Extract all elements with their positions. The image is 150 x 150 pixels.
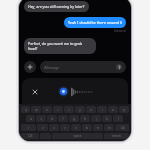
staticText: f: [62, 117, 64, 121]
button[interactable]: j: [91, 115, 101, 122]
button[interactable]: 123: [21, 133, 39, 139]
button[interactable]: space: [52, 133, 103, 139]
button[interactable]: a: [26, 115, 35, 122]
button[interactable]: u: [86, 106, 96, 113]
button[interactable]: h: [80, 115, 90, 122]
button[interactable]: ⌫: [115, 124, 129, 131]
button[interactable]: Hey, are you still coming by later?: [24, 1, 89, 12]
button[interactable]: Record voice message: [58, 86, 69, 97]
staticText: j: [96, 117, 97, 121]
button[interactable]: z: [37, 124, 48, 131]
staticText: l: [118, 117, 119, 121]
button[interactable]: Send: [116, 64, 122, 70]
button[interactable]: m: [104, 124, 114, 131]
staticText: z: [42, 126, 44, 130]
button[interactable]: i: [97, 106, 107, 113]
staticText: m: [108, 126, 111, 130]
staticText: return: [112, 134, 121, 138]
button[interactable]: e: [42, 106, 52, 113]
staticText: Yeah I should be there around 6: [68, 20, 122, 25]
staticText: b: [86, 126, 88, 130]
button[interactable]: Add attachment: [24, 61, 36, 73]
staticText: w: [35, 108, 38, 112]
button[interactable]: s: [36, 115, 46, 122]
staticText: t: [68, 108, 70, 112]
button[interactable]: x: [49, 124, 59, 131]
staticText: k: [106, 117, 108, 121]
button[interactable]: k: [102, 115, 112, 122]
button[interactable]: d: [47, 115, 57, 122]
staticText: q: [25, 108, 27, 112]
staticText: Perfect, do you want me to grab food?: [28, 41, 92, 51]
button[interactable]: return: [104, 133, 129, 139]
button[interactable]: f: [58, 115, 68, 122]
staticText: x: [53, 126, 55, 130]
button[interactable]: c: [60, 124, 70, 131]
staticText: ⌫: [120, 126, 125, 129]
staticText: s: [40, 117, 42, 121]
staticText: u: [90, 108, 92, 112]
button[interactable]: n: [93, 124, 103, 131]
staticText: p: [123, 108, 125, 112]
staticText: d: [51, 117, 53, 121]
button[interactable]: iMessage: [40, 61, 126, 73]
button[interactable]: v: [71, 124, 81, 131]
button[interactable]: Perfect, do you want me to grab food?: [24, 38, 96, 54]
staticText: Hey, are you still coming by later?: [28, 4, 85, 9]
staticText: h: [84, 117, 86, 121]
staticText: 123: [27, 134, 33, 138]
button[interactable]: ⇧: [21, 124, 36, 131]
button[interactable]: t: [64, 106, 74, 113]
staticText: r: [57, 108, 59, 112]
button[interactable]: q: [21, 106, 30, 113]
staticText: c: [64, 126, 66, 130]
staticText: a: [30, 117, 32, 121]
staticText: n: [97, 126, 99, 130]
button[interactable]: Yeah I should be there around 6: [64, 17, 126, 28]
button[interactable]: r: [53, 106, 63, 113]
staticText: ⇧: [27, 126, 30, 129]
button[interactable]: o: [108, 106, 118, 113]
staticText: g: [73, 117, 75, 121]
staticText: o: [112, 108, 114, 112]
button[interactable]: l: [113, 115, 123, 122]
button[interactable]: y: [75, 106, 85, 113]
button[interactable]: g: [69, 115, 79, 122]
staticText: e: [46, 108, 48, 112]
button[interactable]: Close voice message: [30, 87, 39, 96]
staticText: iMessage: [44, 65, 116, 70]
staticText: Delivered: [114, 29, 126, 33]
button[interactable]: p: [119, 106, 129, 113]
staticText: v: [75, 126, 77, 130]
staticText: i: [102, 108, 103, 112]
button[interactable]: b: [82, 124, 92, 131]
button[interactable]: w: [31, 106, 41, 113]
staticText: y: [79, 108, 81, 112]
staticText: space: [73, 134, 82, 138]
